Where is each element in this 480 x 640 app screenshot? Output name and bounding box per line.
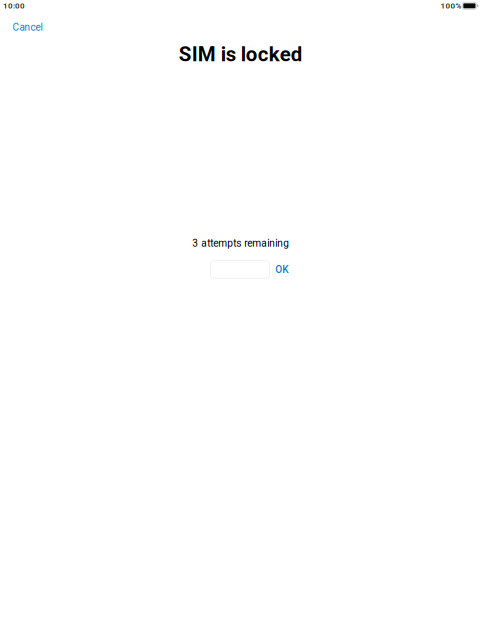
button[interactable]: OK — [271, 259, 292, 281]
staticText: Cancel — [13, 21, 43, 33]
staticText: SIM is locked — [179, 42, 302, 66]
staticText: 3 attempts remaining — [192, 237, 289, 249]
staticText: 100% — [440, 1, 461, 10]
staticText: OK — [275, 264, 288, 276]
staticText: 10:00 — [3, 1, 25, 10]
button[interactable]: Cancel — [6, 15, 50, 39]
